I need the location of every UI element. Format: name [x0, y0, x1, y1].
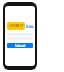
button[interactable]: CONNECT: [7, 22, 25, 30]
staticText: Edit: [26, 24, 34, 29]
button[interactable]: Submit: [7, 43, 33, 48]
button[interactable]: Edit: [26, 22, 34, 30]
staticText: Submit: [15, 44, 26, 48]
staticText: CONNECT: [9, 24, 24, 28]
